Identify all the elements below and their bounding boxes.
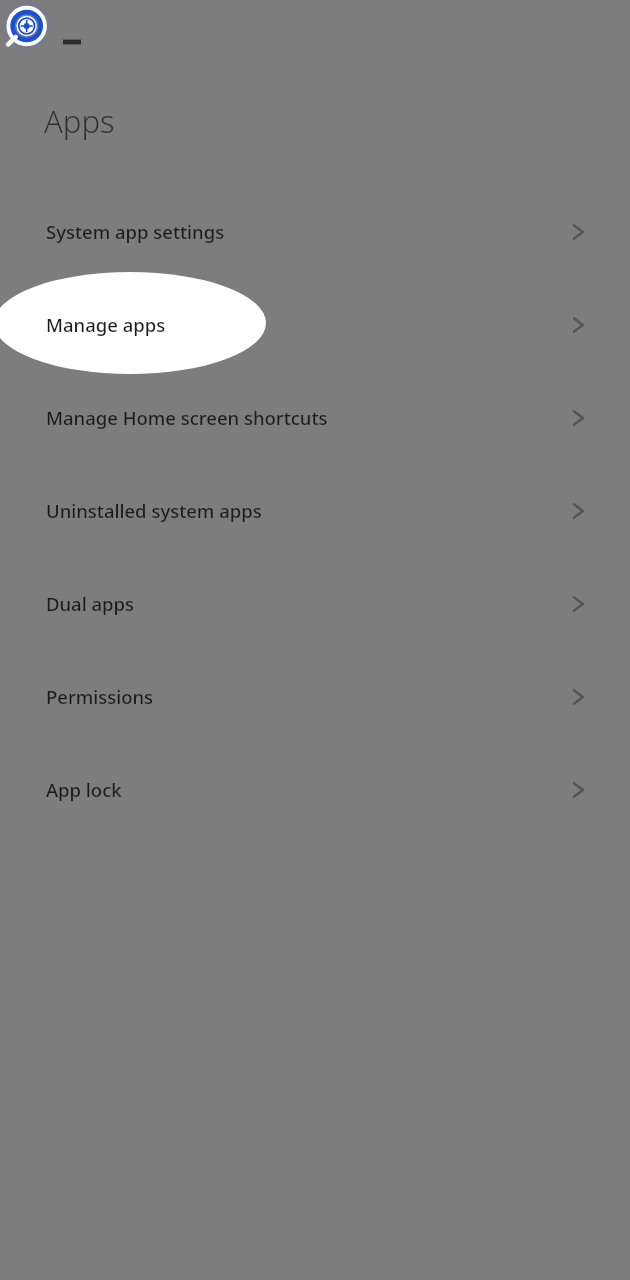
staticText: Uninstalled system apps (46, 498, 262, 523)
staticText: Permissions (46, 684, 154, 709)
button[interactable]: Permissions (0, 650, 630, 743)
staticText: Dual apps (46, 591, 135, 616)
staticText: System app settings (46, 219, 225, 244)
staticText: Manage Home screen shortcuts (46, 405, 328, 430)
button[interactable]: Uninstalled system apps (0, 464, 630, 557)
button[interactable]: Screen recorder overlay (6, 4, 50, 48)
button[interactable]: Manage Home screen shortcuts (0, 371, 630, 464)
staticText: Apps (44, 100, 115, 142)
button[interactable]: Dual apps (0, 557, 630, 650)
button[interactable]: App lock (0, 743, 630, 836)
button[interactable]: Manage apps (0, 278, 630, 371)
staticText: App lock (46, 777, 122, 802)
button[interactable]: System app settings (0, 185, 630, 278)
staticText: Manage apps (46, 312, 166, 337)
